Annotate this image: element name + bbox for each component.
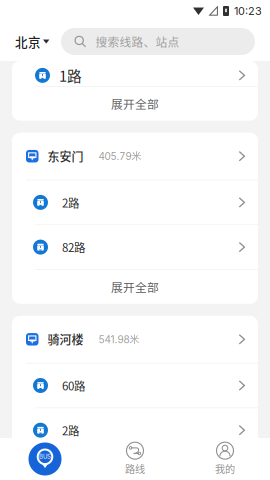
staticText: 1路 <box>59 65 82 86</box>
staticText: 展开全部 <box>111 461 159 478</box>
button[interactable]: 2路 <box>12 408 258 452</box>
button[interactable]: 82路 <box>12 225 258 269</box>
staticText: 骑河楼 <box>47 331 83 348</box>
staticText: 东安门 <box>47 147 83 165</box>
button[interactable]: 北京 <box>0 26 61 56</box>
button[interactable]: 路线 <box>90 438 180 480</box>
staticText: 路线 <box>125 461 145 476</box>
button[interactable]: 骑河楼 <box>12 316 258 363</box>
button[interactable]: 60路 <box>12 363 258 407</box>
staticText: 10:23 <box>234 4 262 18</box>
staticText: BUS <box>39 453 51 460</box>
staticText: 541.98米 <box>98 333 139 346</box>
staticText: 60路 <box>62 377 85 394</box>
staticText: 展开全部 <box>111 95 159 112</box>
button[interactable]: 展开全部 <box>12 453 258 480</box>
button[interactable]: 我的 <box>180 438 270 480</box>
staticText: 我的 <box>215 461 235 476</box>
button[interactable]: 搜索线路、站点 <box>61 28 255 55</box>
staticText: 2路 <box>62 194 79 211</box>
button[interactable]: 展开全部 <box>12 270 258 304</box>
staticText: 搜索线路、站点 <box>95 33 179 50</box>
button[interactable]: 2路 <box>12 180 258 224</box>
button[interactable]: 公交 <box>0 438 90 480</box>
staticText: 405.79米 <box>98 150 141 162</box>
button[interactable]: 东安门 <box>12 133 258 180</box>
staticText: 2路 <box>62 422 79 438</box>
staticText: 展开全部 <box>111 278 159 295</box>
button[interactable]: 1路 <box>12 61 258 86</box>
staticText: 82路 <box>62 239 85 255</box>
staticText: 北京 <box>15 32 41 50</box>
button[interactable]: 展开全部 <box>12 87 258 121</box>
